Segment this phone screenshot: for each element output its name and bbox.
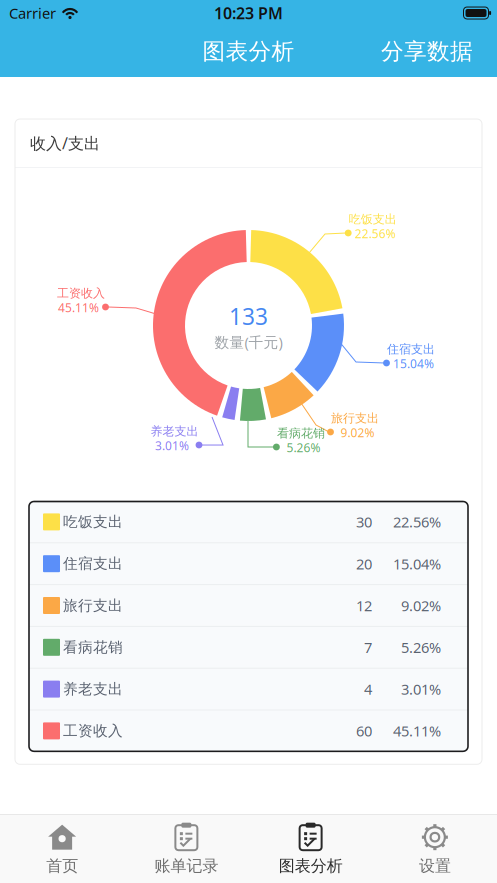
staticText: 12 [356, 596, 372, 615]
button[interactable]: 设置 [373, 822, 497, 876]
staticText: 分享数据 [381, 38, 473, 65]
staticText: 4 [364, 679, 372, 699]
staticText: 养老支出 [63, 680, 123, 698]
button[interactable]: 账单记录 [124, 822, 248, 876]
staticText: 收入/支出 [30, 132, 100, 154]
staticText: 看病花销 [63, 638, 123, 656]
staticText: 账单记录 [154, 856, 218, 876]
staticText: 5.26% [401, 638, 441, 657]
staticText: 图表分析 [202, 38, 294, 65]
staticText: 吃饭支出 [349, 212, 397, 227]
staticText: 首页 [46, 856, 78, 876]
staticText: 45.11% [58, 300, 99, 316]
staticText: Carrier [9, 3, 56, 23]
staticText: 3.01% [155, 438, 189, 454]
staticText: 5.26% [286, 440, 320, 456]
button[interactable]: 首页 [0, 822, 124, 876]
staticText: 数量(千元) [214, 332, 282, 352]
staticText: 30 [356, 512, 372, 532]
button[interactable]: 图表分析 [248, 822, 373, 876]
staticText: 工资收入 [63, 722, 123, 740]
staticText: 22.56% [393, 512, 441, 532]
staticText: 吃饭支出 [63, 513, 123, 531]
staticText: 旅行支出 [63, 596, 123, 614]
staticText: 9.02% [401, 596, 441, 615]
staticText: 10:23 PM [214, 2, 283, 24]
staticText: 工资收入 [57, 286, 105, 301]
staticText: 20 [356, 554, 372, 573]
staticText: 9.02% [340, 425, 374, 441]
staticText: 60 [356, 721, 372, 741]
staticText: 133 [229, 301, 268, 331]
staticText: 设置 [419, 856, 451, 876]
staticText: 看病花销 [277, 426, 325, 441]
staticText: 15.04% [393, 554, 441, 573]
staticText: 45.11% [393, 721, 441, 741]
staticText: 住宿支出 [387, 342, 435, 357]
staticText: 住宿支出 [63, 555, 123, 573]
staticText: 旅行支出 [331, 411, 379, 426]
staticText: 养老支出 [150, 424, 198, 439]
staticText: 22.56% [355, 226, 396, 242]
staticText: 图表分析 [279, 856, 343, 876]
staticText: 7 [364, 638, 372, 657]
button[interactable]: 分享数据 [370, 26, 497, 77]
staticText: 15.04% [393, 356, 434, 372]
staticText: 3.01% [401, 679, 441, 699]
